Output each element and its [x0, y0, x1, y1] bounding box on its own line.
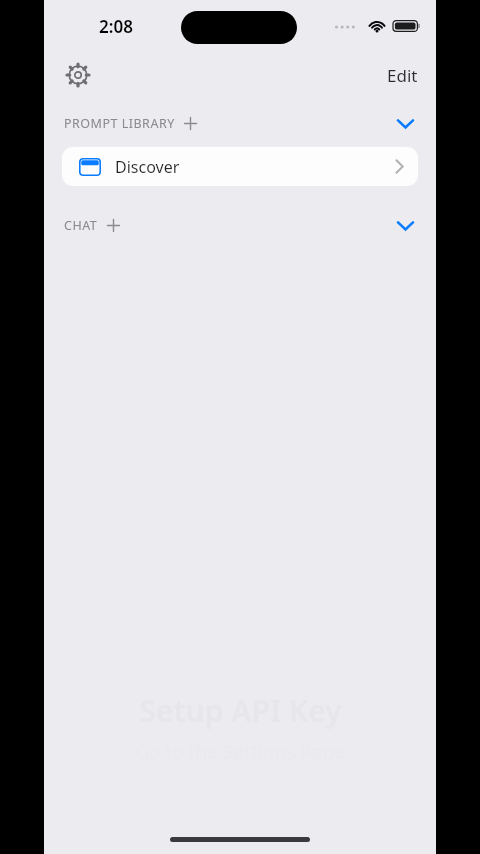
- staticText: Discover: [115, 156, 180, 178]
- button[interactable]: Discover: [62, 147, 418, 186]
- staticText: CHAT: [64, 217, 98, 234]
- button[interactable]: Collapse section: [388, 208, 422, 242]
- button[interactable]: Collapse section: [388, 106, 422, 140]
- button[interactable]: PROMPT LIBRARY: [62, 112, 199, 135]
- staticText: Edit: [387, 64, 418, 87]
- button[interactable]: Edit: [379, 58, 426, 93]
- button[interactable]: CHAT: [62, 214, 122, 237]
- staticText: 2:08: [99, 15, 133, 38]
- staticText: PROMPT LIBRARY: [64, 115, 175, 132]
- button[interactable]: Settings: [58, 55, 98, 95]
